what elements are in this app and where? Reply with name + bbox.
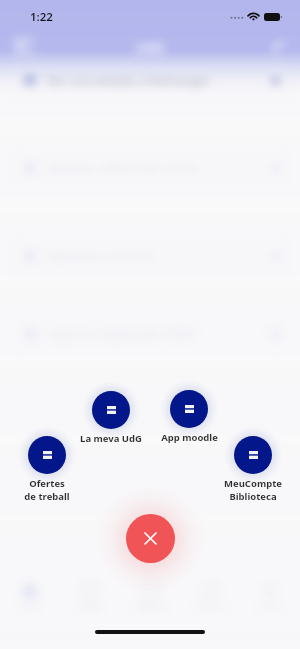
button[interactable]: Ofertes bbox=[28, 436, 66, 474]
staticText: Ofertes bbox=[29, 477, 65, 490]
staticText: 1:22 bbox=[30, 9, 53, 25]
staticText: Biblioteca bbox=[229, 490, 277, 503]
button[interactable]: Fer una estada a l'estranger bbox=[8, 60, 292, 104]
staticText: UdG bbox=[135, 38, 165, 57]
button[interactable]: App moodle bbox=[170, 390, 208, 428]
staticText: Fer una estada a l'estranger bbox=[47, 74, 210, 91]
staticText: de treball bbox=[24, 490, 70, 503]
button[interactable]: La meva UdG bbox=[92, 391, 130, 429]
staticText: MeuCompte bbox=[224, 477, 282, 490]
button[interactable]: Close menu bbox=[126, 514, 175, 563]
staticText: App moodle bbox=[161, 431, 218, 444]
button[interactable]: Inici bbox=[0, 583, 60, 617]
staticText: La meva UdG bbox=[80, 432, 142, 445]
button[interactable]: MeuCompte bbox=[234, 436, 272, 474]
